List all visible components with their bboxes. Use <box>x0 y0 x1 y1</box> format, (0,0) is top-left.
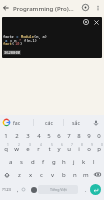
staticText: 3 <box>26 132 30 140</box>
staticText: ( <box>12 41 15 46</box>
staticText: d <box>31 158 35 166</box>
staticText: r <box>37 145 40 153</box>
staticText: , <box>17 186 19 193</box>
button[interactable]: Enter <box>90 184 101 195</box>
button[interactable]: Google <box>1 117 12 128</box>
staticText: w <box>14 145 19 153</box>
button[interactable]: 2 <box>11 129 22 142</box>
staticText: fac <box>13 119 21 126</box>
staticText: f(n-1) <box>24 38 37 43</box>
staticText: factr <box>3 34 14 39</box>
staticText: . <box>85 186 87 193</box>
staticText: h <box>62 158 66 166</box>
button[interactable]: x <box>25 168 36 181</box>
button[interactable]: Language <box>20 181 27 198</box>
button[interactable]: n <box>69 168 80 181</box>
button[interactable]: More options <box>92 2 103 13</box>
staticText: 2 <box>18 143 20 147</box>
staticText: Programming (Pro)... <box>13 4 74 12</box>
button[interactable]: h <box>59 155 69 168</box>
staticText: 1 <box>7 143 9 147</box>
button[interactable]: c <box>36 168 47 181</box>
staticText: x <box>29 171 33 179</box>
staticText: 3 <box>29 143 31 147</box>
staticText: t <box>48 145 51 153</box>
staticText: (n, a) <box>34 34 47 39</box>
staticText: 9 <box>91 143 93 147</box>
button[interactable]: l <box>89 155 99 168</box>
button[interactable]: Run <box>81 17 91 27</box>
button[interactable]: 1 <box>0 142 11 155</box>
button[interactable]: 0 <box>94 142 104 155</box>
staticText: s <box>20 158 23 166</box>
staticText: j <box>73 158 75 166</box>
staticText: = n <box>10 38 19 43</box>
staticText: 3628800 <box>4 50 20 55</box>
staticText: n <box>73 171 77 179</box>
button[interactable]: 6 <box>54 129 64 142</box>
button[interactable]: Shift <box>0 168 13 181</box>
button[interactable]: a <box>5 155 16 168</box>
button[interactable]: 9 <box>84 129 94 142</box>
button[interactable]: Help <box>79 1 92 14</box>
staticText: c <box>40 171 43 179</box>
staticText: 9 <box>87 132 91 140</box>
button[interactable]: d <box>27 155 38 168</box>
button[interactable]: m <box>80 168 91 181</box>
button[interactable]: 7 <box>64 142 74 155</box>
staticText: 0 <box>101 143 103 147</box>
staticText: 4 <box>37 132 41 140</box>
staticText: 0 <box>97 132 101 140</box>
staticText: * <box>19 38 24 43</box>
button[interactable]: 8 <box>74 129 84 142</box>
staticText: u <box>67 145 71 153</box>
staticText: 5 <box>51 143 53 147</box>
button[interactable]: b <box>58 168 69 181</box>
button[interactable]: Back <box>0 2 11 13</box>
button[interactable]: Comma <box>13 181 22 198</box>
button[interactable]: z <box>13 168 25 181</box>
staticText: k <box>82 158 86 166</box>
button[interactable]: Close <box>91 17 101 27</box>
button[interactable]: 6 <box>54 142 64 155</box>
button[interactable]: 7 <box>64 129 74 142</box>
button[interactable]: Emoji <box>28 184 39 195</box>
staticText: ) <box>20 41 23 46</box>
staticText: Module <box>21 34 34 39</box>
button[interactable]: 5 <box>44 129 54 142</box>
button[interactable]: 0 <box>94 129 104 142</box>
staticText: sắc <box>72 119 80 126</box>
button[interactable]: 2 <box>11 142 22 155</box>
button[interactable]: 3 <box>22 142 33 155</box>
staticText: m <box>83 171 89 179</box>
button[interactable]: 1 <box>0 129 11 142</box>
button[interactable]: Voice input <box>90 117 101 128</box>
staticText: p <box>97 145 101 153</box>
staticText: 2 <box>15 132 19 140</box>
button[interactable]: 9 <box>84 142 94 155</box>
staticText: 7 <box>71 143 73 147</box>
staticText: a <box>9 158 13 166</box>
button[interactable]: j <box>69 155 79 168</box>
button[interactable]: Backspace <box>91 168 104 181</box>
button[interactable]: s <box>16 155 27 168</box>
button[interactable]: v <box>47 168 58 181</box>
button[interactable]: k <box>79 155 89 168</box>
button[interactable]: g <box>49 155 59 168</box>
button[interactable]: ?123 <box>0 181 13 198</box>
staticText: 7 <box>67 132 71 140</box>
button[interactable]: 8 <box>74 142 84 155</box>
button[interactable]: Tiếng Việt <box>38 185 78 194</box>
staticText: = <box>14 34 21 39</box>
button[interactable]: 5 <box>44 142 54 155</box>
button[interactable]: f <box>38 155 49 168</box>
staticText: f <box>42 158 45 166</box>
staticText: 10 <box>15 41 20 46</box>
button[interactable]: 4 <box>33 129 44 142</box>
staticText: i <box>78 145 80 153</box>
button[interactable]: Period <box>81 181 90 198</box>
staticText: fact <box>3 41 12 46</box>
button[interactable]: 3 <box>22 129 33 142</box>
staticText: b <box>62 171 66 179</box>
button[interactable]: 4 <box>33 142 44 155</box>
